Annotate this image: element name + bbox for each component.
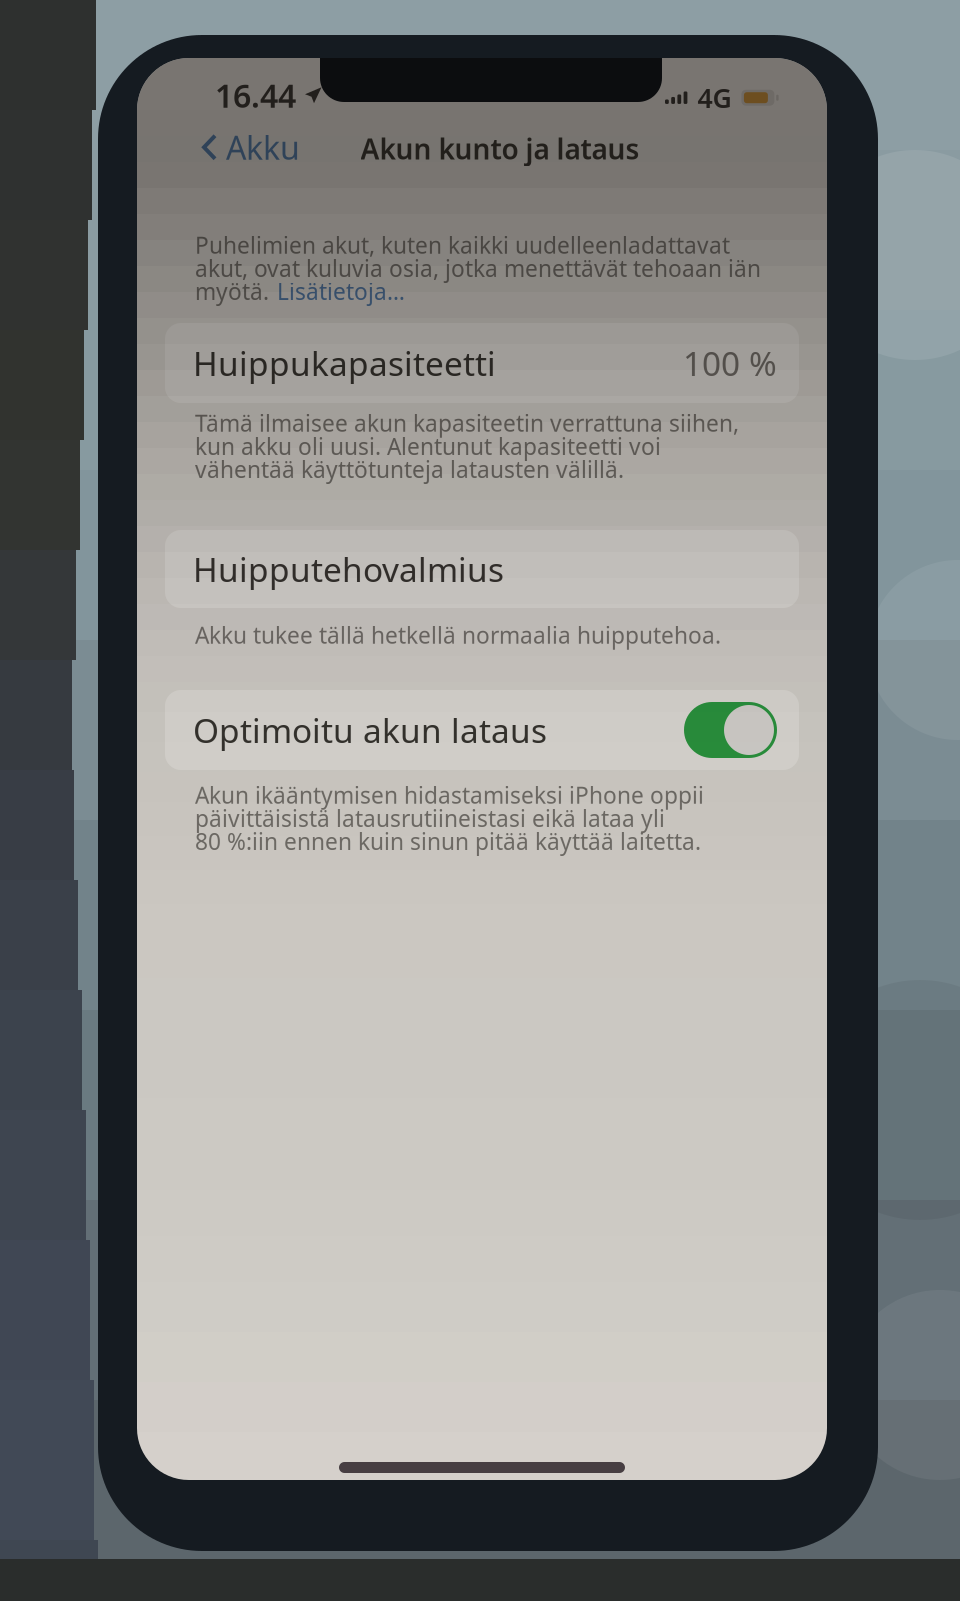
staticText: Akun ikääntymisen hidastamiseksi iPhone … xyxy=(195,780,704,810)
staticText: Tämä ilmaisee akun kapasiteetin verrattu… xyxy=(195,408,739,438)
staticText: Akku xyxy=(226,126,300,168)
staticText: 16.44 xyxy=(215,74,296,116)
staticText: Huippukapasiteetti xyxy=(193,341,496,385)
staticText: 4G xyxy=(697,80,731,115)
button[interactable]: Huippukapasiteetti xyxy=(165,323,799,403)
staticText: Optimoitu akun lataus xyxy=(193,708,547,752)
staticText: Lisätietoja… xyxy=(277,276,405,306)
staticText: vähentää käyttötunteja latausten välillä… xyxy=(195,454,624,484)
button[interactable]: Akku xyxy=(189,116,312,178)
button[interactable]: Optimoitu akun lataus, käytössä xyxy=(684,702,777,758)
staticText: Huipputehovalmius xyxy=(193,547,504,591)
staticText: myötä. xyxy=(195,276,269,306)
staticText: Akun kunto ja lataus xyxy=(360,130,639,167)
staticText: Akku tukee tällä hetkellä normaalia huip… xyxy=(195,620,721,650)
staticText: akut, ovat kuluvia osia, jotka menettävä… xyxy=(195,253,761,283)
button[interactable]: Huipputehovalmius xyxy=(165,530,799,608)
staticText: Puhelimien akut, kuten kaikki uudelleenl… xyxy=(195,230,730,260)
button[interactable]: Lisätietoja… xyxy=(277,276,405,306)
staticText: 100 % xyxy=(683,341,777,385)
staticText: 80 %:iin ennen kuin sinun pitää käyttää … xyxy=(195,826,701,856)
staticText: päivittäisistä latausrutiineistasi eikä … xyxy=(195,803,665,833)
staticText: kun akku oli uusi. Alentunut kapasiteett… xyxy=(195,431,661,461)
